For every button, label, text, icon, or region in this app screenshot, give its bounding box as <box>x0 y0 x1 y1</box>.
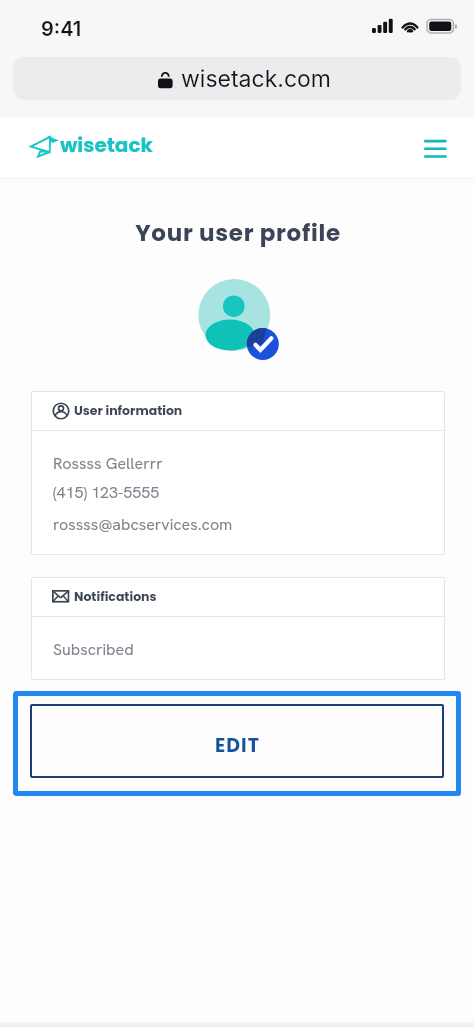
staticText: wisetack <box>60 131 153 159</box>
staticText: EDIT <box>215 732 260 759</box>
staticText: User information <box>74 402 183 419</box>
staticText: 9:41 <box>41 17 82 41</box>
button[interactable]: EDIT <box>13 691 461 796</box>
staticText: Subscribed <box>53 639 134 660</box>
staticText: rossss@abcservices.com <box>53 514 233 535</box>
staticText: Rossss Gellerrr <box>53 453 163 474</box>
staticText: (415) 123-5555 <box>53 482 160 503</box>
staticText: Your user profile <box>1 217 474 249</box>
staticText: wisetack.com <box>181 65 331 93</box>
button[interactable]: wisetack.com <box>13 57 461 100</box>
staticText: Notifications <box>74 588 157 605</box>
button[interactable]: Open navigation menu <box>414 127 456 169</box>
